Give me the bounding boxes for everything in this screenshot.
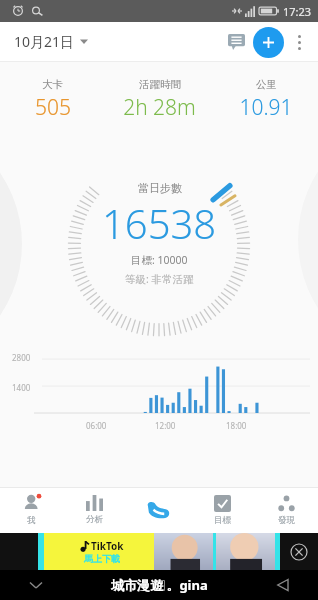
button[interactable]: 大卡 [0,76,105,124]
staticText: 等級: 非常活躍 [125,272,194,286]
button[interactable]: Recents [145,571,173,599]
button[interactable]: 公里 [214,76,318,124]
button[interactable]: TikTok [38,533,280,570]
button[interactable]: 目標 [190,487,254,533]
staticText: 10.91 [239,93,293,122]
staticText: 2800 [12,352,31,363]
staticText: 505 [35,93,71,122]
staticText: 分析 [86,514,103,525]
staticText: 發現 [278,515,295,526]
staticText: 當日步數 [138,181,182,195]
button[interactable]: Steps [136,488,180,532]
staticText: 大卡 [42,78,63,91]
button[interactable]: Hide keyboard [22,571,50,599]
staticText: 我 [27,515,36,526]
staticText: 目標: 10000 [131,253,188,267]
staticText: 活躍時間 [139,78,181,91]
staticText: 1400 [12,382,31,393]
button[interactable]: Back [268,571,296,599]
staticText: 目標 [214,515,231,526]
staticText: 17:23 [283,4,312,19]
button[interactable]: 10月21日 [0,28,96,55]
staticText: 12:00 [155,420,176,431]
staticText: 18:00 [226,420,247,431]
button[interactable]: Messages [219,25,253,59]
staticText: 06:00 [86,420,107,431]
button[interactable]: 活躍時間 [105,76,214,124]
button[interactable]: 我 [0,487,63,533]
button[interactable]: 發現 [254,487,318,533]
button[interactable]: Close ad [290,543,308,561]
staticText: 城市漫遊 。gina [111,576,208,594]
button[interactable]: 分析 [63,487,126,533]
staticText: 10月21日 [14,32,75,51]
staticText: TikTok [91,539,124,553]
staticText: 2h 28m [123,93,196,122]
staticText: 16538 [102,196,217,250]
button[interactable]: More options [284,27,314,57]
staticText: 公里 [256,78,277,91]
button[interactable]: Add [253,27,284,58]
staticText: 馬上下載 [84,553,120,564]
